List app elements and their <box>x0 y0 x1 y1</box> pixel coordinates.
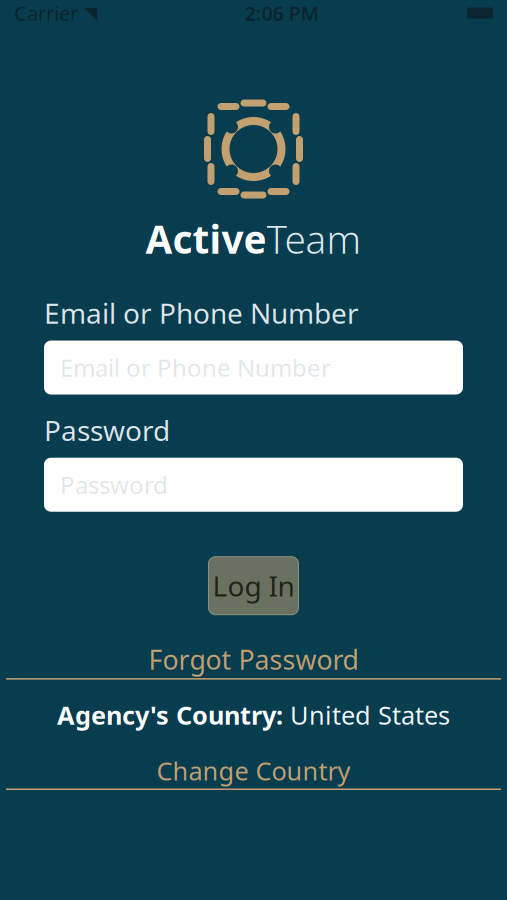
staticText: Agency's Country: <box>57 698 283 732</box>
staticText: Change Country <box>156 754 350 787</box>
staticText: Team <box>266 213 361 264</box>
staticText: Active <box>145 213 266 264</box>
button[interactable]: Log In <box>208 557 298 615</box>
staticText: Password <box>44 411 170 449</box>
staticText: Log In <box>212 567 294 604</box>
staticText: Password <box>60 469 168 501</box>
button[interactable]: Forgot Password <box>0 638 507 684</box>
staticText: ◥ <box>78 3 97 23</box>
staticText: Email or Phone Number <box>44 294 359 331</box>
button[interactable]: Change Country <box>0 750 507 794</box>
staticText: Carrier <box>14 0 78 26</box>
staticText: Forgot Password <box>148 642 358 677</box>
staticText: 2:06 PM <box>244 0 319 26</box>
staticText: Email or Phone Number <box>60 352 331 383</box>
staticText: United States <box>283 698 450 732</box>
